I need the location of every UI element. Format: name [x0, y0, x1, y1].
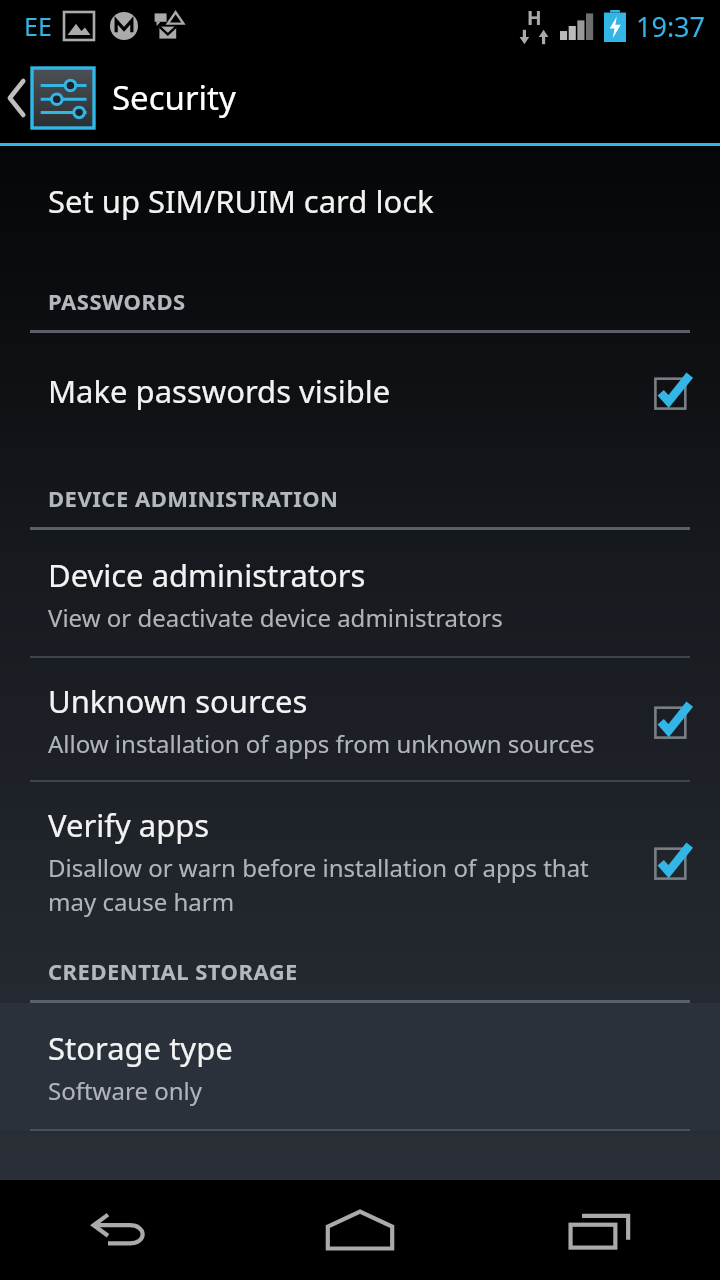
other: Enabled checkbox [651, 839, 695, 883]
button[interactable]: Storage type [0, 1003, 720, 1131]
button[interactable]: Device administrators [0, 530, 720, 658]
staticText: Verify apps [48, 804, 210, 846]
staticText: CREDENTIAL STORAGE [48, 956, 298, 986]
other: Enabled checkbox [651, 698, 695, 742]
button[interactable]: Set up SIM/RUIM card lock [0, 146, 720, 256]
staticText: Allow installation of apps from unknown … [48, 727, 595, 760]
staticText: Disallow or warn before installation of … [48, 851, 606, 918]
button[interactable]: Recent apps [480, 1180, 720, 1280]
staticText: H [527, 5, 542, 31]
staticText: Storage type [48, 1027, 233, 1069]
button[interactable]: Make passwords visible [0, 333, 720, 449]
button[interactable]: Home [240, 1180, 480, 1280]
other: Enabled checkbox [651, 369, 695, 413]
button[interactable]: Unknown sources [0, 658, 720, 782]
button[interactable]: Navigate up, Security [0, 52, 236, 143]
staticText: 19:37 [636, 8, 706, 45]
staticText: View or deactivate device administrators [48, 601, 503, 634]
button[interactable]: Back [0, 1180, 240, 1280]
button[interactable]: Verify apps [0, 782, 720, 938]
staticText: Make passwords visible [48, 370, 391, 412]
staticText: Security [112, 75, 236, 120]
staticText: Software only [48, 1074, 202, 1107]
staticText: DEVICE ADMINISTRATION [48, 483, 339, 513]
staticText: Device administrators [48, 554, 366, 596]
staticText: Unknown sources [48, 680, 308, 722]
staticText: EE [24, 9, 52, 43]
staticText: Set up SIM/RUIM card lock [48, 180, 434, 222]
staticText: PASSWORDS [48, 286, 186, 316]
